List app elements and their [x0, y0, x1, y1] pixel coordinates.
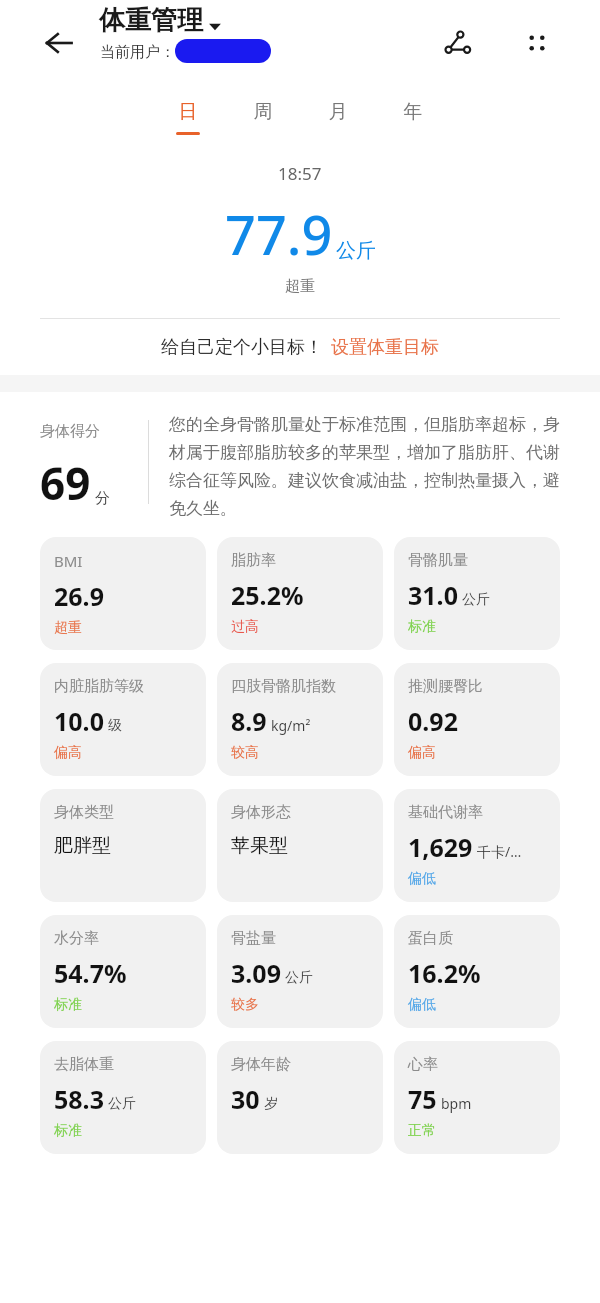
button[interactable]: 蛋白质 — [394, 915, 560, 1028]
button[interactable]: Back — [34, 18, 84, 68]
staticText: 公斤 — [108, 1095, 136, 1113]
staticText: 脂肪率 — [231, 551, 276, 570]
button[interactable]: 四肢骨骼肌指数 — [217, 663, 383, 776]
staticText: 31.0 — [408, 578, 458, 612]
staticText: 58.3 — [54, 1082, 104, 1116]
staticText: 18:57 — [278, 162, 322, 185]
staticText: 公斤 — [285, 969, 313, 987]
button[interactable]: 日 — [174, 100, 202, 135]
staticText: 骨骼肌量 — [408, 551, 468, 570]
staticText: 推测腰臀比 — [408, 677, 483, 696]
staticText: 给自己定个小目标！ — [161, 336, 323, 359]
button[interactable]: 身体类型 — [40, 789, 206, 902]
button[interactable]: 体重管理 — [99, 4, 222, 37]
staticText: 0.92 — [408, 704, 458, 738]
staticText: 30 — [231, 1082, 260, 1116]
staticText: 月 — [324, 100, 352, 124]
staticText: kg/m² — [271, 716, 311, 735]
staticText: 身体得分 — [40, 422, 100, 441]
staticText: 超重 — [54, 619, 82, 637]
staticText: 年 — [399, 100, 427, 124]
button[interactable]: 身体年龄 — [217, 1041, 383, 1154]
button[interactable]: 骨骼肌量 — [394, 537, 560, 650]
staticText: 8.9 — [231, 704, 267, 738]
staticText: 基础代谢率 — [408, 803, 483, 822]
staticText: 偏低 — [408, 996, 436, 1014]
staticText: bpm — [441, 1094, 472, 1113]
staticText: 标准 — [408, 618, 436, 636]
staticText: 偏低 — [408, 870, 436, 888]
staticText: 日 — [174, 100, 202, 124]
staticText: 正常 — [408, 1122, 436, 1140]
staticText: 体重管理 — [99, 4, 203, 37]
staticText: 3.09 — [231, 956, 281, 990]
staticText: 肥胖型 — [54, 834, 111, 858]
staticText: 骨盐量 — [231, 929, 276, 948]
button[interactable]: 周 — [249, 100, 277, 124]
button[interactable]: 推测腰臀比 — [394, 663, 560, 776]
staticText: 身体类型 — [54, 803, 114, 822]
button[interactable]: 给自己定个小目标！ — [0, 319, 600, 375]
button[interactable]: 骨盐量 — [217, 915, 383, 1028]
staticText: 75 — [408, 1082, 437, 1116]
staticText: 超重 — [285, 277, 315, 296]
staticText: 岁 — [264, 1095, 278, 1113]
staticText: BMI — [54, 551, 83, 571]
staticText: 10.0 — [54, 704, 104, 738]
staticText: 级 — [108, 717, 122, 735]
staticText: 标准 — [54, 1122, 82, 1140]
staticText: 设置体重目标 — [331, 336, 439, 359]
staticText: 较多 — [231, 996, 259, 1014]
staticText: 77.9 — [225, 197, 333, 271]
staticText: 公斤 — [462, 591, 490, 609]
button[interactable]: 脂肪率 — [217, 537, 383, 650]
staticText: 过高 — [231, 618, 259, 636]
staticText: 25.2% — [231, 578, 304, 612]
staticText: 16.2% — [408, 956, 481, 990]
staticText: 公斤 — [336, 238, 376, 263]
staticText: 心率 — [408, 1055, 438, 1074]
staticText: 蛋白质 — [408, 929, 453, 948]
staticText: 当前用户： — [100, 43, 175, 62]
button[interactable]: 水分率 — [40, 915, 206, 1028]
button[interactable]: BMI — [40, 537, 206, 650]
staticText: 身体形态 — [231, 803, 291, 822]
staticText: 内脏脂肪等级 — [54, 677, 144, 696]
button[interactable]: 去脂体重 — [40, 1041, 206, 1154]
button[interactable]: 心率 — [394, 1041, 560, 1154]
button[interactable]: 月 — [324, 100, 352, 124]
staticText: 较高 — [231, 744, 259, 762]
staticText: 身体年龄 — [231, 1055, 291, 1074]
button[interactable]: 基础代谢率 — [394, 789, 560, 902]
staticText: 千卡/… — [477, 842, 522, 861]
staticText: 偏高 — [54, 744, 82, 762]
staticText: 去脂体重 — [54, 1055, 114, 1074]
staticText: 26.9 — [54, 579, 104, 613]
staticText: 标准 — [54, 996, 82, 1014]
staticText: 偏高 — [408, 744, 436, 762]
button[interactable]: 年 — [399, 100, 427, 124]
staticText: 69 — [40, 453, 91, 513]
staticText: 苹果型 — [231, 834, 288, 858]
staticText: 1,629 — [408, 830, 473, 864]
button[interactable]: More options — [512, 18, 562, 68]
staticText: 四肢骨骼肌指数 — [231, 677, 336, 696]
staticText: 54.7% — [54, 956, 127, 990]
button[interactable]: 身体形态 — [217, 789, 383, 902]
staticText: 分 — [95, 489, 110, 508]
staticText: 周 — [249, 100, 277, 124]
staticText: 您的全身骨骼肌量处于标准范围，但脂肪率超标，身材属于腹部脂肪较多的苹果型，增加了… — [169, 414, 564, 519]
staticText: 水分率 — [54, 929, 99, 948]
button[interactable]: Share — [432, 18, 482, 68]
button[interactable]: 内脏脂肪等级 — [40, 663, 206, 776]
